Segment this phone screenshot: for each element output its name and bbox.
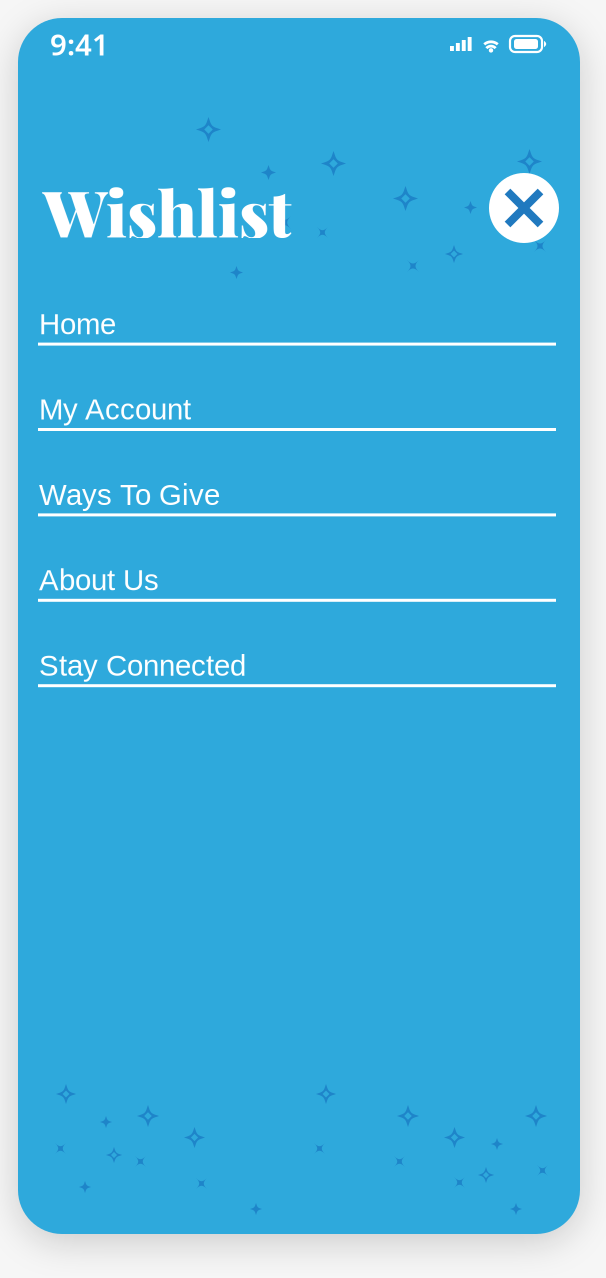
staticText: 9:41 [50,24,109,63]
staticText: Stay Connected [39,649,246,682]
button[interactable]: Close [489,173,559,243]
staticText: About Us [39,564,159,597]
button[interactable]: Ways To Give [38,469,556,555]
staticText: Ways To Give [39,478,220,511]
staticText: My Account [39,393,191,426]
button[interactable]: Stay Connected [38,640,556,726]
button[interactable]: About Us [38,555,556,640]
staticText: Home [39,308,116,340]
staticText: Wishlist [43,168,291,253]
button[interactable]: Home [38,299,556,384]
button[interactable]: My Account [38,384,556,469]
